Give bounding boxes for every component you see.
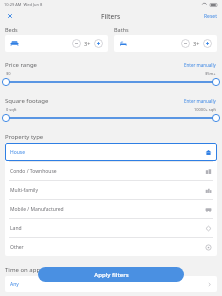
staticText: Reset (204, 13, 217, 20)
staticText: Any (10, 281, 19, 288)
staticText: House (10, 149, 26, 156)
staticText: Land (10, 225, 22, 232)
button[interactable]: Reset (203, 12, 218, 21)
button[interactable]: Close (4, 10, 16, 22)
button[interactable]: Condo / Townhouse (5, 162, 217, 180)
button[interactable]: Price range slider (0, 77, 222, 87)
button[interactable]: Enter manually (183, 62, 217, 68)
staticText: Filters (101, 12, 121, 21)
staticText: Other (10, 244, 24, 251)
button[interactable]: Land (5, 219, 217, 237)
button[interactable]: Decrease Baths (181, 39, 190, 48)
button[interactable]: Other (5, 238, 217, 256)
staticText: Time on app (5, 266, 41, 274)
staticText: $0 (6, 71, 11, 76)
staticText: 3+ (84, 40, 91, 47)
button[interactable]: Square footage slider (0, 113, 222, 123)
staticText: Apply filters (94, 271, 129, 279)
staticText: 0 sqft (6, 107, 17, 112)
button[interactable]: Decrease Beds (72, 39, 81, 48)
button[interactable]: Any (5, 276, 217, 292)
staticText: Condo / Townhouse (10, 168, 57, 175)
staticText: Baths (114, 26, 129, 33)
staticText: Mobile / Manufactured (10, 206, 64, 213)
button[interactable]: Multi-family (5, 181, 217, 199)
staticText: Beds (5, 26, 18, 33)
staticText: Price range (5, 61, 37, 69)
button[interactable]: Increase Beds (94, 39, 103, 48)
button[interactable]: Increase Baths (203, 39, 212, 48)
staticText: $5m+ (205, 71, 216, 76)
button[interactable]: Enter manually (183, 98, 217, 104)
staticText: 3+ (193, 40, 200, 47)
staticText: 10000+ sqft (194, 107, 216, 112)
staticText: Multi-family (10, 187, 38, 194)
button[interactable]: Apply filters (38, 267, 184, 282)
staticText: Square footage (5, 97, 49, 105)
staticText: 10:29 AM Wed Jun 8 (4, 2, 43, 7)
staticText: Property type (5, 133, 44, 141)
staticText: Enter manually (184, 98, 216, 104)
button[interactable]: Mobile / Manufactured (5, 200, 217, 218)
staticText: Enter manually (184, 62, 216, 68)
button[interactable]: House (5, 143, 217, 161)
